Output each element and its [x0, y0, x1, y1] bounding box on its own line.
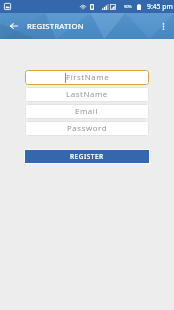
staticText: 9:45 pm	[147, 2, 173, 11]
staticText: REGISTER	[70, 152, 104, 161]
staticText: Password	[67, 123, 108, 134]
button[interactable]: Password	[25, 121, 149, 136]
staticText: Email	[75, 106, 99, 117]
button[interactable]: More options	[156, 15, 170, 37]
button[interactable]: Back	[4, 15, 24, 37]
button[interactable]: Email	[25, 104, 149, 119]
staticText: REGISTRATION	[27, 21, 84, 32]
staticText: 90%	[124, 4, 132, 9]
button[interactable]: LastName	[25, 87, 149, 102]
staticText: FirstName	[66, 72, 110, 83]
staticText: LastName	[66, 89, 108, 100]
button[interactable]: FirstName	[25, 70, 149, 85]
button[interactable]: REGISTER	[25, 150, 149, 163]
